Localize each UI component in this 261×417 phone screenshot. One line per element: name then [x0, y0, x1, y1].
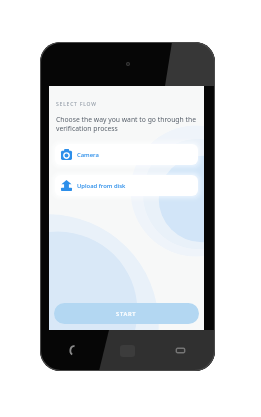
staticText: START	[116, 310, 137, 318]
button[interactable]: START	[54, 303, 199, 324]
other: Back	[175, 345, 186, 356]
staticText: SELECT FLOW	[56, 101, 97, 108]
staticText: Choose the way you want to go through th…	[56, 115, 201, 133]
other: Call	[68, 345, 79, 356]
button[interactable]: Upload from disk	[55, 175, 198, 196]
button[interactable]: Camera	[55, 144, 198, 165]
staticText: Camera	[77, 151, 99, 159]
staticText: Upload from disk	[77, 182, 126, 190]
